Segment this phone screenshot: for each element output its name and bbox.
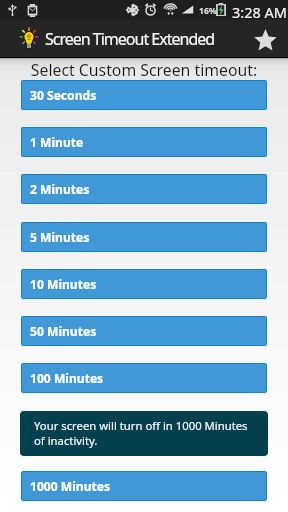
button[interactable]: 30 Seconds (22, 81, 266, 109)
staticText: 50 Minutes (30, 323, 97, 339)
staticText: 5 Minutes (30, 229, 90, 245)
button[interactable]: 1000 Minutes (22, 472, 266, 500)
staticText: 30 Seconds (30, 87, 97, 103)
staticText: Select Custom Screen timeout: (0, 59, 288, 81)
button[interactable]: 50 Minutes (22, 317, 266, 345)
button[interactable]: 1 Minute (22, 128, 266, 156)
staticText: 10 Minutes (30, 276, 97, 292)
staticText: 1000 Minutes (30, 478, 111, 494)
staticText: 1 Minute (30, 134, 84, 150)
button[interactable]: Favorite (251, 25, 280, 54)
staticText: 100 Minutes (30, 370, 104, 386)
button[interactable]: 10 Minutes (22, 270, 266, 298)
staticText: 3:28 AM (232, 2, 287, 22)
button[interactable]: 2 Minutes (22, 175, 266, 203)
staticText: Your screen will turn off in 1000 Minute… (34, 418, 260, 448)
staticText: Screen Timeout Extended (45, 28, 215, 50)
staticText: 2 Minutes (30, 181, 90, 197)
button[interactable]: 100 Minutes (22, 364, 266, 392)
button[interactable]: 5 Minutes (22, 223, 266, 251)
staticText: 16% (199, 5, 217, 17)
